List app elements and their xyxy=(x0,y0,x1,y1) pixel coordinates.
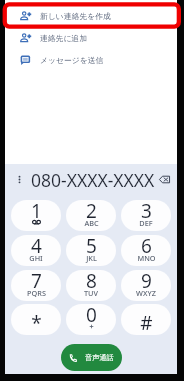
staticText: 新しい連絡先を作成 xyxy=(40,11,111,21)
staticText: DEF xyxy=(139,218,153,228)
staticText: 6 xyxy=(141,235,152,259)
staticText: WXYZ xyxy=(136,288,156,298)
staticText: ABC xyxy=(84,218,99,228)
button[interactable]: 5 xyxy=(66,235,116,266)
staticText: # xyxy=(140,310,153,335)
button[interactable]: Backspace xyxy=(154,169,174,189)
button[interactable]: * xyxy=(11,304,61,335)
button[interactable]: 7 xyxy=(11,270,61,301)
button[interactable]: # xyxy=(121,304,171,335)
staticText: PQRS xyxy=(27,288,46,298)
button[interactable]: 0 xyxy=(66,304,116,335)
staticText: GHI xyxy=(29,253,43,263)
button[interactable]: More options xyxy=(9,169,29,189)
staticText: MNO xyxy=(137,253,156,263)
staticText: 080-XXXX-XXXX xyxy=(31,168,155,190)
staticText: 0 xyxy=(86,304,97,328)
staticText: 4 xyxy=(31,235,42,259)
staticText: メッセージを送信 xyxy=(40,55,104,65)
staticText: 5 xyxy=(86,235,97,259)
staticText: 8 xyxy=(86,270,97,294)
staticText: 3 xyxy=(141,200,152,224)
button[interactable]: メッセージを送信 xyxy=(5,49,177,71)
button[interactable]: 6 xyxy=(121,235,171,266)
staticText: 音声通話 xyxy=(85,353,114,362)
button[interactable]: 2 xyxy=(66,200,116,231)
staticText: 連絡先に追加 xyxy=(40,33,87,43)
button[interactable]: 3 xyxy=(121,200,171,231)
staticText: * xyxy=(31,310,42,335)
button[interactable]: 9 xyxy=(121,270,171,301)
staticText: 1 xyxy=(31,200,42,224)
button[interactable]: 8 xyxy=(66,270,116,301)
button[interactable]: 新しい連絡先を作成 xyxy=(5,5,177,27)
staticText: TUV xyxy=(84,288,98,298)
staticText: 9 xyxy=(141,270,152,294)
staticText: 2 xyxy=(86,200,97,224)
button[interactable]: 音声通話 xyxy=(61,344,122,371)
button[interactable]: 1 xyxy=(11,200,61,231)
button[interactable]: 連絡先に追加 xyxy=(5,27,177,49)
staticText: JKL xyxy=(86,253,97,263)
button[interactable]: 4 xyxy=(11,235,61,266)
staticText: 7 xyxy=(31,270,42,294)
